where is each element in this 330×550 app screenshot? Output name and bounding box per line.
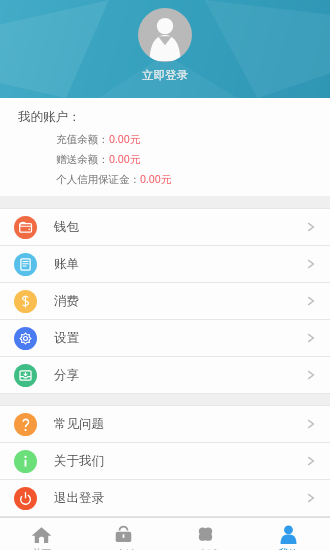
button[interactable]: 退出登录 — [0, 480, 330, 516]
staticText: 关于我们 — [54, 453, 104, 469]
button[interactable]: 账单 — [0, 246, 330, 282]
button[interactable]: 钱包 — [0, 209, 330, 245]
staticText: 0.00 — [109, 132, 130, 146]
staticText: 元 — [130, 153, 141, 166]
button[interactable]: 关于我们 — [0, 443, 330, 479]
button[interactable]: 设置 — [0, 320, 330, 356]
staticText: 赠送余额： — [56, 153, 109, 166]
staticText: 账单 — [54, 256, 79, 272]
staticText: 钱包 — [54, 219, 79, 235]
staticText: 我的 — [279, 547, 298, 550]
button[interactable]: 常见问题 — [0, 406, 330, 442]
button[interactable]: 我的 — [247, 518, 330, 550]
button[interactable]: 分享 — [0, 357, 330, 393]
staticText: 元 — [161, 173, 172, 186]
staticText: 充值余额： — [56, 133, 109, 146]
button[interactable]: 首页 — [0, 518, 82, 550]
button[interactable]: e商城 — [82, 518, 164, 550]
staticText: 设置 — [54, 330, 79, 346]
staticText: 0.00 — [109, 152, 130, 166]
staticText: 首页 — [32, 547, 51, 550]
staticText: e生活 — [193, 547, 218, 550]
staticText: 立即登录 — [142, 68, 188, 82]
staticText: 我的账户： — [18, 109, 81, 125]
button[interactable]: e生活 — [164, 518, 247, 550]
staticText: 常见问题 — [54, 416, 104, 432]
staticText: 分享 — [54, 367, 79, 383]
button[interactable]: 消费 — [0, 283, 330, 319]
button[interactable]: Avatar — [138, 8, 192, 62]
staticText: 退出登录 — [54, 490, 104, 506]
staticText: 个人信用保证金： — [56, 173, 140, 186]
staticText: 消费 — [54, 293, 79, 309]
staticText: 元 — [130, 133, 141, 146]
staticText: e商城 — [111, 547, 136, 550]
staticText: 0.00 — [140, 172, 161, 186]
